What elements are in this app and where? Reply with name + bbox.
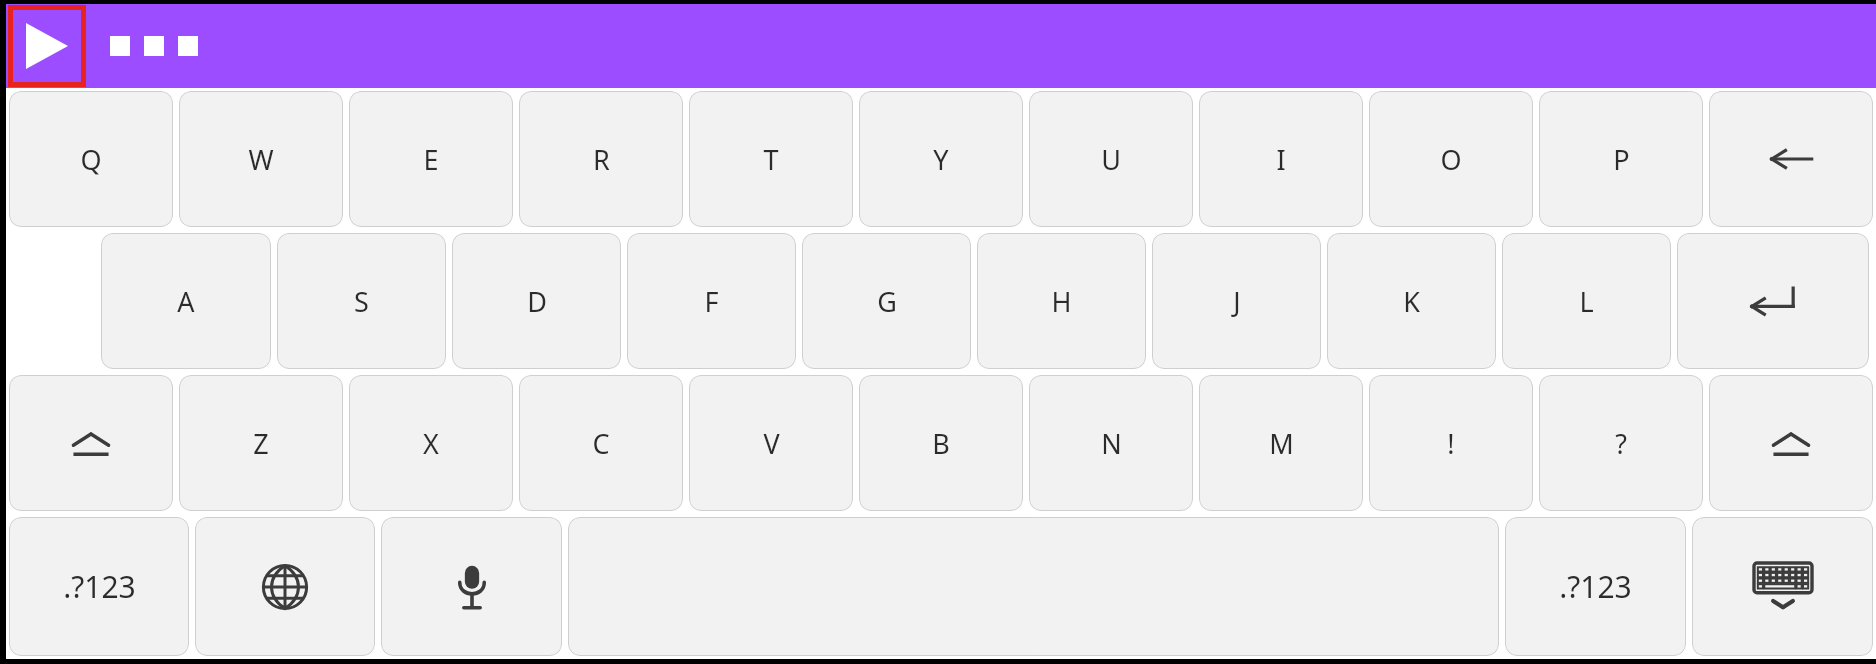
button[interactable]: Q [9, 91, 173, 227]
button[interactable]: ? [1539, 375, 1703, 511]
button[interactable]: Enter [1677, 233, 1869, 369]
button[interactable]: F [627, 233, 796, 369]
button[interactable]: M [1199, 375, 1363, 511]
staticText: ! [1447, 425, 1455, 462]
staticText: O [1440, 141, 1462, 178]
staticText: N [1101, 425, 1122, 462]
staticText: W [248, 141, 274, 178]
button[interactable]: V [689, 375, 853, 511]
staticText: Z [253, 425, 269, 462]
button[interactable]: U [1029, 91, 1193, 227]
button[interactable]: Change language [195, 517, 375, 656]
button[interactable]: H [977, 233, 1146, 369]
staticText: G [877, 283, 897, 320]
button[interactable]: More options [110, 36, 198, 56]
staticText: H [1051, 283, 1072, 320]
staticText: E [423, 141, 439, 178]
button[interactable]: K [1327, 233, 1496, 369]
button[interactable]: R [519, 91, 683, 227]
staticText: X [423, 425, 439, 462]
button[interactable]: W [179, 91, 343, 227]
staticText: S [354, 283, 369, 320]
button[interactable]: Shift [1709, 375, 1873, 511]
staticText: C [592, 425, 610, 462]
button[interactable]: Z [179, 375, 343, 511]
button[interactable]: Y [859, 91, 1023, 227]
button[interactable]: G [802, 233, 971, 369]
staticText: .?123 [1559, 566, 1632, 607]
button[interactable]: .?123 [1505, 517, 1686, 656]
button[interactable]: D [452, 233, 621, 369]
staticText: P [1613, 141, 1630, 178]
button[interactable]: A [101, 233, 271, 369]
button[interactable]: O [1369, 91, 1533, 227]
staticText: R [593, 141, 610, 178]
button[interactable]: N [1029, 375, 1193, 511]
button[interactable]: Voice input [381, 517, 562, 656]
staticText: Q [80, 141, 102, 178]
staticText: L [1579, 283, 1594, 320]
button[interactable]: ! [1369, 375, 1533, 511]
button[interactable]: P [1539, 91, 1703, 227]
button[interactable]: Hide keyboard [1692, 517, 1873, 656]
button[interactable]: B [859, 375, 1023, 511]
button[interactable]: Shift [9, 375, 173, 511]
button[interactable]: E [349, 91, 513, 227]
button[interactable]: I [1199, 91, 1363, 227]
button[interactable]: S [277, 233, 446, 369]
staticText: ? [1615, 425, 1627, 462]
button[interactable]: Space [568, 517, 1499, 656]
staticText: M [1269, 425, 1294, 462]
button[interactable]: J [1152, 233, 1321, 369]
staticText: I [1276, 141, 1286, 178]
button[interactable]: .?123 [9, 517, 189, 656]
staticText: A [177, 283, 195, 320]
staticText: Y [933, 141, 949, 178]
button[interactable]: T [689, 91, 853, 227]
button[interactable]: Backspace [1709, 91, 1873, 227]
staticText: K [1403, 283, 1420, 320]
button[interactable]: Play [8, 5, 86, 87]
staticText: T [763, 141, 779, 178]
button[interactable]: L [1502, 233, 1671, 369]
staticText: D [527, 283, 547, 320]
staticText: F [704, 283, 719, 320]
button[interactable]: C [519, 375, 683, 511]
staticText: U [1101, 141, 1121, 178]
button[interactable]: X [349, 375, 513, 511]
staticText: V [763, 425, 780, 462]
staticText: J [1233, 283, 1241, 320]
staticText: B [932, 425, 950, 462]
staticText: .?123 [63, 566, 136, 607]
